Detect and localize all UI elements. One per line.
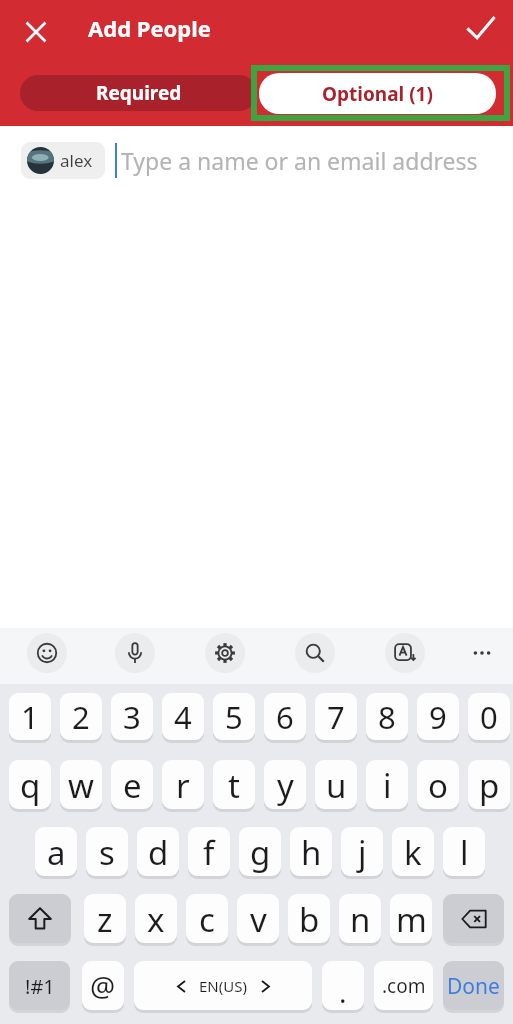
staticText: !#1 [25, 973, 55, 1000]
staticText: z [97, 897, 113, 942]
staticText: Required [96, 80, 182, 106]
staticText: b [299, 897, 320, 942]
button[interactable]: u [315, 760, 357, 810]
button[interactable]: l [443, 827, 485, 877]
staticText: 0 [480, 696, 498, 738]
staticText: 4 [174, 696, 192, 738]
staticText: e [123, 763, 142, 808]
staticText: p [479, 763, 500, 808]
button[interactable]: n [339, 894, 381, 944]
staticText: 3 [123, 696, 141, 738]
button[interactable]: 5 [213, 693, 255, 741]
staticText: @ [90, 967, 116, 1005]
staticText: Optional (1) [322, 81, 433, 107]
button[interactable]: 6 [264, 693, 306, 741]
staticText: u [326, 763, 347, 808]
button[interactable]: 3 [111, 693, 153, 741]
staticText: 2 [72, 696, 90, 738]
button[interactable]: EN(US) [134, 961, 312, 1011]
staticText: h [301, 830, 322, 875]
button[interactable]: k [392, 827, 434, 877]
button[interactable]: o [417, 760, 459, 810]
button[interactable]: j [341, 827, 383, 877]
staticText: Done [447, 972, 500, 1001]
button[interactable]: 7 [315, 693, 357, 741]
button[interactable]: Required [20, 75, 257, 111]
button[interactable]: w [60, 760, 102, 810]
staticText: d [148, 830, 169, 875]
button[interactable]: 9 [417, 693, 459, 741]
staticText: Add People [88, 13, 211, 43]
staticText: c [199, 897, 215, 942]
button[interactable] [295, 633, 335, 673]
staticText: Type a name or an email address [121, 145, 478, 176]
button[interactable]: q [9, 760, 51, 810]
button[interactable] [9, 894, 71, 944]
staticText: k [404, 830, 422, 875]
button[interactable]: 8 [366, 693, 408, 741]
staticText: g [250, 830, 271, 875]
button[interactable]: d [137, 827, 179, 877]
staticText: l [460, 830, 469, 875]
staticText: j [358, 830, 367, 875]
button[interactable]: . [322, 961, 364, 1011]
staticText: i [383, 763, 392, 808]
button[interactable]: 4 [162, 693, 204, 741]
staticText: q [20, 763, 41, 808]
button[interactable]: b [288, 894, 330, 944]
button[interactable]: i [366, 760, 408, 810]
staticText: 6 [276, 696, 294, 738]
button[interactable]: alex [21, 142, 105, 179]
staticText: EN(US) [199, 976, 247, 996]
staticText: o [428, 763, 448, 808]
button[interactable]: y [264, 760, 306, 810]
staticText: .com [382, 973, 426, 999]
staticText: m [396, 897, 427, 942]
button[interactable] [115, 633, 155, 673]
button[interactable]: e [111, 760, 153, 810]
button[interactable]: v [237, 894, 279, 944]
button[interactable] [462, 9, 500, 47]
staticText: f [203, 830, 215, 875]
button[interactable]: t [213, 760, 255, 810]
button[interactable]: r [162, 760, 204, 810]
button[interactable] [443, 894, 504, 944]
button[interactable]: g [239, 827, 281, 877]
button[interactable]: z [84, 894, 126, 944]
staticText: a [47, 830, 66, 875]
staticText: 9 [429, 696, 447, 738]
button[interactable] [385, 633, 425, 673]
button[interactable]: f [188, 827, 230, 877]
button[interactable] [462, 633, 502, 673]
button[interactable] [205, 633, 245, 673]
button[interactable]: x [135, 894, 177, 944]
staticText: t [228, 763, 240, 808]
staticText: 7 [327, 696, 345, 738]
button[interactable] [27, 633, 67, 673]
button[interactable] [22, 17, 49, 44]
staticText: s [99, 830, 115, 875]
button[interactable]: @ [82, 961, 124, 1011]
button[interactable]: Done [443, 961, 504, 1011]
button[interactable]: 2 [60, 693, 102, 741]
button[interactable]: c [186, 894, 228, 944]
staticText: n [350, 897, 371, 942]
staticText: 5 [225, 696, 243, 738]
staticText: y [277, 763, 294, 808]
staticText: v [250, 897, 267, 942]
staticText: w [68, 763, 94, 808]
staticText: r [176, 763, 190, 808]
staticText: . [339, 973, 347, 1011]
button[interactable]: a [35, 827, 77, 877]
button[interactable]: .com [374, 961, 433, 1011]
button[interactable]: 0 [468, 693, 510, 741]
button[interactable]: 1 [9, 693, 51, 741]
staticText: 8 [378, 696, 396, 738]
button[interactable]: p [468, 760, 510, 810]
button[interactable]: s [86, 827, 128, 877]
button[interactable]: h [290, 827, 332, 877]
button[interactable]: Optional (1) [259, 73, 496, 114]
button[interactable]: !#1 [9, 961, 70, 1011]
staticText: x [147, 897, 165, 942]
button[interactable]: m [390, 894, 432, 944]
